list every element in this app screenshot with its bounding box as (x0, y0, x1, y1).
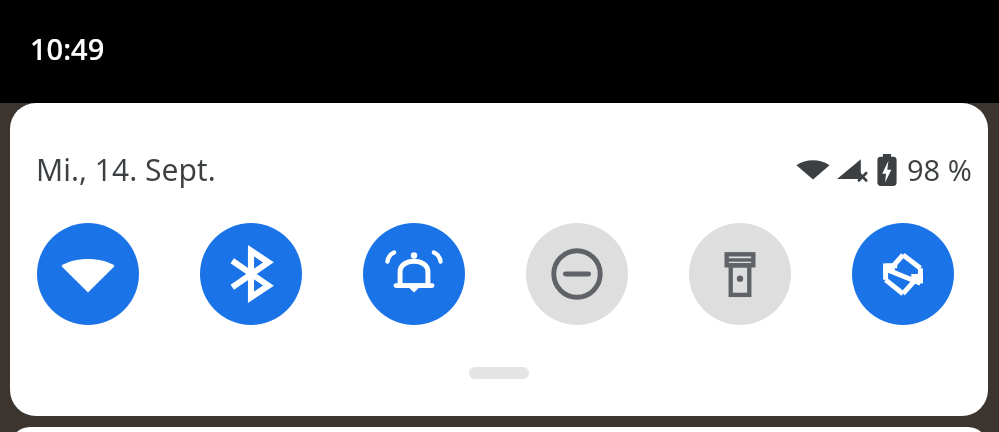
button[interactable]: Auto-rotate (852, 223, 954, 325)
button[interactable]: Flashlight (689, 223, 791, 325)
staticText: Mi., 14. Sept. (36, 149, 216, 190)
button[interactable]: Do not disturb (526, 223, 628, 325)
button[interactable]: Ring (363, 223, 465, 325)
button[interactable]: Bluetooth (200, 223, 302, 325)
staticText: 10:49 (30, 29, 105, 68)
staticText: 98 % (907, 150, 972, 189)
button[interactable]: Wi-Fi (37, 223, 139, 325)
